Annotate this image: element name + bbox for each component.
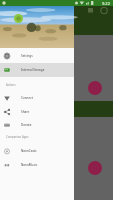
staticText: Share <box>21 110 30 114</box>
button[interactable]: NanoCasts <box>0 144 74 158</box>
button[interactable]: Connect <box>0 91 74 105</box>
button[interactable]: Internal Storage <box>0 63 74 77</box>
staticText: NanoMusic <box>21 163 38 167</box>
staticText: Connect <box>21 96 33 100</box>
staticText: Settings <box>21 54 33 58</box>
staticText: 9:22 <box>102 1 110 6</box>
staticText: NanoCasts <box>21 149 37 153</box>
button[interactable]: Add <box>88 161 102 175</box>
staticText: Donate <box>21 123 32 127</box>
button[interactable]: Share <box>0 105 74 119</box>
button[interactable]: NanoMusic <box>0 158 74 172</box>
button[interactable]: Donate <box>0 118 74 132</box>
staticText: Companion Apps <box>6 135 29 139</box>
button[interactable]: Settings <box>0 49 74 63</box>
button[interactable]: Add <box>88 81 102 95</box>
staticText: Internal Storage <box>21 68 45 72</box>
staticText: Actions <box>6 83 16 87</box>
